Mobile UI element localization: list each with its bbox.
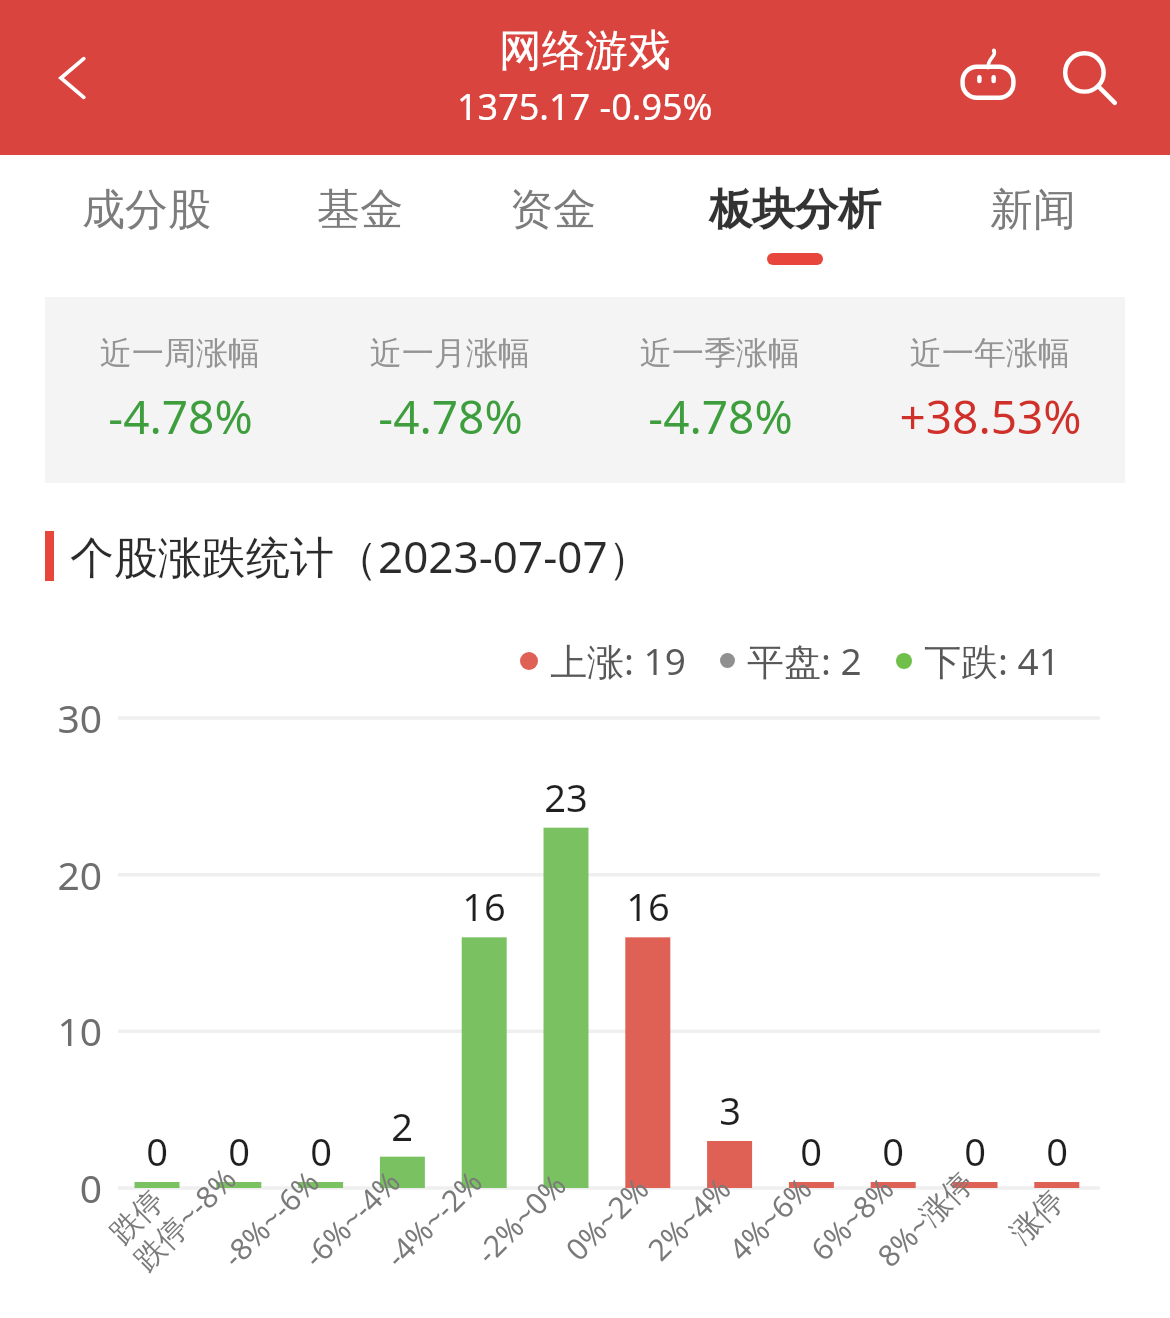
- staticText: 20: [57, 848, 102, 901]
- button[interactable]: 成分股: [16, 155, 276, 297]
- staticText: 板块分析: [709, 183, 881, 237]
- staticText: 0: [310, 1125, 332, 1177]
- staticText: 近一月涨幅: [370, 333, 530, 373]
- staticText: 0: [800, 1125, 822, 1177]
- staticText: -4.78%: [108, 385, 253, 448]
- button[interactable]: 资金: [423, 155, 683, 297]
- button[interactable]: AI assistant: [942, 32, 1034, 124]
- staticText: 跌停~-8%: [124, 1158, 245, 1279]
- staticText: 0%~2%: [556, 1168, 657, 1269]
- button[interactable]: 基金: [230, 155, 490, 297]
- staticText: 2%~4%: [638, 1168, 739, 1269]
- staticText: -4.78%: [648, 385, 793, 448]
- staticText: -4.78%: [378, 385, 523, 448]
- button[interactable]: 新闻: [903, 155, 1163, 297]
- staticText: 近一年涨幅: [910, 333, 1070, 373]
- staticText: 个股涨跌统计（2023-07-07）: [70, 526, 652, 586]
- staticText: -6%~-4%: [294, 1161, 409, 1276]
- staticText: 0: [79, 1161, 102, 1214]
- staticText: 0: [1046, 1125, 1068, 1177]
- staticText: -8%~-6%: [213, 1161, 328, 1276]
- staticText: 1375.17 -0.95%: [457, 82, 713, 131]
- button[interactable]: 上涨: 19: [520, 635, 686, 686]
- button[interactable]: Back: [32, 35, 118, 121]
- staticText: 新闻: [990, 183, 1076, 237]
- staticText: 平盘: 2: [747, 635, 862, 686]
- staticText: 6%~8%: [801, 1168, 902, 1269]
- staticText: 近一季涨幅: [640, 333, 800, 373]
- staticText: 23: [544, 771, 588, 823]
- staticText: 成分股: [82, 183, 211, 237]
- staticText: 0: [146, 1125, 168, 1177]
- staticText: -4%~-2%: [376, 1161, 491, 1276]
- staticText: 0: [882, 1125, 904, 1177]
- button[interactable]: 下跌: 41: [896, 635, 1060, 686]
- button[interactable]: Search: [1044, 32, 1136, 124]
- staticText: 16: [462, 880, 506, 932]
- staticText: 资金: [510, 183, 596, 237]
- staticText: 8%~涨停: [868, 1162, 982, 1275]
- staticText: 涨停: [1002, 1182, 1072, 1252]
- staticText: 30: [57, 691, 102, 744]
- staticText: 10: [57, 1004, 102, 1057]
- button[interactable]: 平盘: 2: [720, 635, 862, 686]
- staticText: 16: [626, 880, 670, 932]
- staticText: 近一周涨幅: [100, 333, 260, 373]
- staticText: -2%~0%: [467, 1165, 574, 1272]
- staticText: 基金: [317, 183, 403, 237]
- staticText: 下跌: 41: [924, 635, 1060, 686]
- staticText: 3: [719, 1084, 741, 1136]
- staticText: 0: [964, 1125, 986, 1177]
- button[interactable]: 板块分析: [665, 155, 925, 297]
- staticText: 网络游戏: [499, 24, 671, 78]
- staticText: 2: [391, 1100, 413, 1152]
- staticText: 0: [228, 1125, 250, 1177]
- staticText: 上涨: 19: [550, 635, 686, 686]
- staticText: 跌停: [102, 1182, 172, 1252]
- staticText: +38.53%: [899, 385, 1082, 448]
- staticText: 4%~6%: [719, 1168, 820, 1269]
